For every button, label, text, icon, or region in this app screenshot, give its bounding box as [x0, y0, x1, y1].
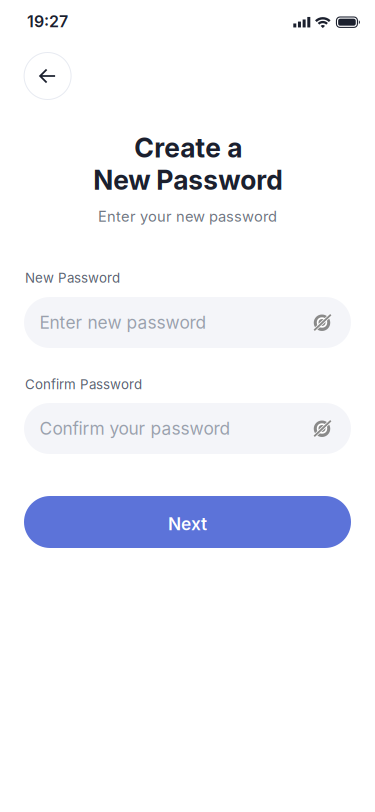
staticText: Enter your new password: [98, 208, 277, 225]
staticText: Next: [168, 514, 207, 534]
staticText: Confirm Password: [25, 377, 142, 392]
staticText: Create a New Password: [93, 132, 283, 196]
staticText: New Password: [25, 270, 120, 286]
button[interactable]: Enter new password: [24, 297, 351, 348]
staticText: Enter new password: [39, 312, 206, 333]
button[interactable]: Confirm your password: [24, 403, 351, 454]
button[interactable]: Show password: [312, 418, 332, 438]
button[interactable]: Back: [24, 52, 71, 99]
staticText: 19:27: [27, 12, 68, 31]
button[interactable]: Next: [24, 496, 351, 548]
button[interactable]: Show password: [312, 312, 332, 332]
staticText: Confirm your password: [39, 418, 230, 439]
